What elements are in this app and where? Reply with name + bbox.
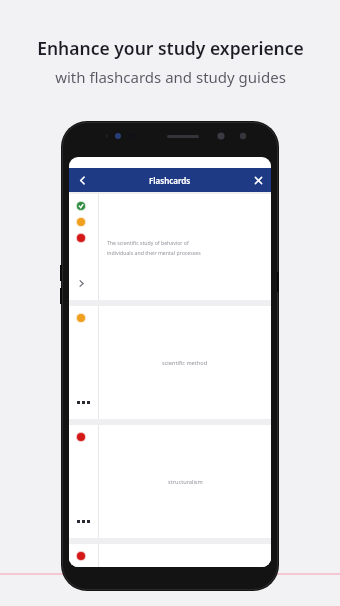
button[interactable]: Expand card [69, 194, 271, 300]
button[interactable]: More options [69, 306, 271, 419]
staticText: structuralism [168, 478, 203, 486]
staticText: with flashcards and study guides [55, 67, 286, 87]
button[interactable]: More options [74, 516, 92, 526]
button[interactable]: Expand card [76, 278, 86, 288]
staticText: The scientific study of behavior of [107, 239, 189, 246]
button[interactable]: More options [74, 397, 92, 407]
staticText: individuals and their mental processes [107, 249, 201, 256]
staticText: scientific method [162, 359, 208, 367]
button[interactable]: More options [69, 425, 271, 538]
staticText: Enhance your study experience [37, 36, 304, 60]
staticText: Flashcards [149, 175, 191, 186]
button[interactable]: Close [245, 168, 271, 192]
button[interactable]: Back [69, 168, 95, 192]
button[interactable] [69, 544, 271, 567]
